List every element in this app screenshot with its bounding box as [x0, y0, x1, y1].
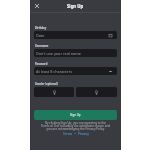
button[interactable]: Date [34, 31, 117, 39]
staticText: Birthday [35, 26, 47, 30]
button[interactable]: Privacy [78, 132, 89, 136]
staticText: • [73, 132, 78, 136]
staticText: Sign Up [70, 113, 81, 117]
button[interactable]: Female [34, 87, 74, 97]
other: Show password [109, 70, 112, 73]
staticText: At least 8 characters [36, 69, 73, 74]
staticText: By clicking Sign Up, you are agreeing to… [34, 121, 117, 131]
staticText: Date [36, 33, 45, 38]
staticText: Gender (optional) [35, 82, 58, 86]
button[interactable]: Sign Up [34, 110, 117, 120]
button[interactable]: At least 8 characters [34, 67, 117, 75]
button[interactable]: Don't use your real name [34, 49, 117, 57]
staticText: Sign Up [67, 3, 84, 9]
button[interactable]: Terms [63, 132, 73, 136]
staticText: Don't use your real name [36, 51, 81, 56]
staticText: Password [35, 62, 48, 66]
other: Pick date [109, 34, 112, 37]
button[interactable]: Male [76, 87, 117, 97]
staticText: Username [35, 44, 49, 48]
button[interactable]: Close [32, 1, 42, 11]
